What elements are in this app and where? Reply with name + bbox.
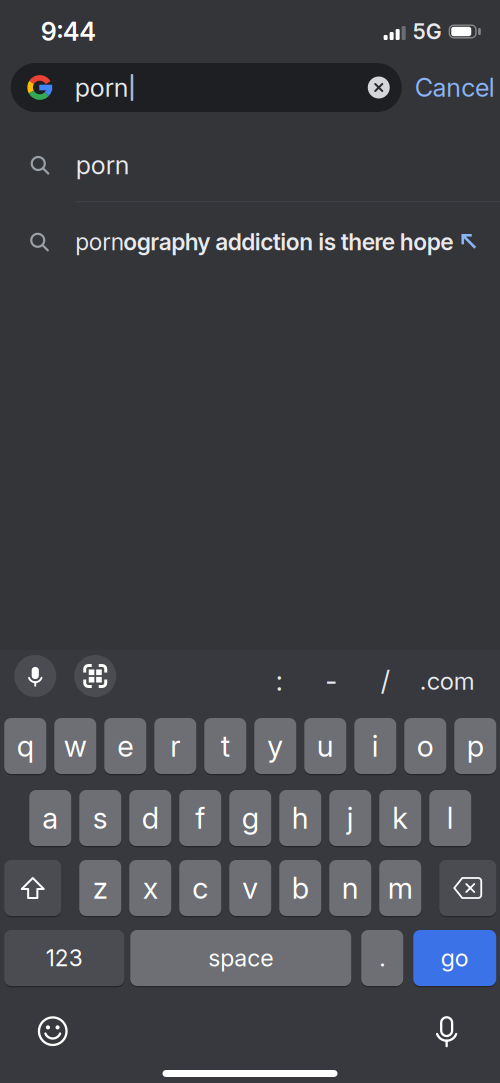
- button[interactable]: t: [204, 718, 246, 774]
- button[interactable]: f: [179, 790, 221, 846]
- staticText: t: [221, 728, 230, 764]
- staticText: :: [276, 665, 283, 697]
- button[interactable]: e: [104, 718, 146, 774]
- button[interactable]: x: [129, 860, 171, 916]
- button[interactable]: :: [269, 660, 289, 692]
- staticText: -: [325, 665, 337, 697]
- button[interactable]: Shift: [4, 860, 61, 916]
- staticText: 5G: [413, 19, 442, 44]
- staticText: u: [317, 728, 334, 764]
- staticText: v: [242, 870, 258, 906]
- button[interactable]: s: [79, 790, 121, 846]
- staticText: r: [170, 728, 180, 764]
- button[interactable]: Cancel: [415, 72, 495, 103]
- button[interactable]: r: [154, 718, 196, 774]
- staticText: c: [192, 870, 208, 906]
- staticText: go: [441, 944, 469, 972]
- staticText: g: [242, 800, 259, 836]
- staticText: m: [388, 870, 413, 906]
- button[interactable]: Scan Text: [74, 655, 116, 697]
- staticText: y: [267, 728, 283, 764]
- button[interactable]: space: [130, 930, 351, 986]
- button[interactable]: z: [79, 860, 121, 916]
- button[interactable]: w: [54, 718, 96, 774]
- button[interactable]: -: [321, 660, 341, 692]
- staticText: x: [143, 870, 158, 906]
- button[interactable]: l: [429, 790, 471, 846]
- button[interactable]: o: [404, 718, 446, 774]
- staticText: i: [372, 728, 379, 764]
- button[interactable]: porn: [0, 129, 500, 201]
- staticText: f: [195, 800, 205, 836]
- button[interactable]: n: [329, 860, 371, 916]
- staticText: a: [42, 800, 58, 836]
- button[interactable]: b: [279, 860, 321, 916]
- button[interactable]: .: [361, 930, 403, 986]
- button[interactable]: u: [304, 718, 346, 774]
- button[interactable]: /: [375, 660, 395, 692]
- button[interactable]: porn: [11, 63, 402, 112]
- staticText: w: [64, 728, 87, 764]
- staticText: Cancel: [415, 72, 495, 103]
- staticText: h: [292, 800, 309, 836]
- staticText: d: [142, 800, 159, 836]
- button[interactable]: a: [29, 790, 71, 846]
- button[interactable]: 123: [4, 930, 124, 986]
- staticText: b: [292, 870, 309, 906]
- button[interactable]: Clear text: [368, 76, 390, 98]
- button[interactable]: Dictation: [14, 655, 56, 697]
- button[interactable]: k: [379, 790, 421, 846]
- button[interactable]: d: [129, 790, 171, 846]
- staticText: 123: [46, 944, 83, 972]
- staticText: l: [447, 800, 454, 836]
- button[interactable]: c: [179, 860, 221, 916]
- staticText: /: [381, 665, 390, 697]
- staticText: porn: [75, 72, 129, 103]
- staticText: n: [342, 870, 359, 906]
- button[interactable]: m: [379, 860, 421, 916]
- button[interactable]: .com: [417, 661, 477, 690]
- staticText: s: [93, 800, 108, 836]
- button[interactable]: i: [354, 718, 396, 774]
- button[interactable]: g: [229, 790, 271, 846]
- button[interactable]: v: [229, 860, 271, 916]
- staticText: porn: [76, 150, 130, 180]
- staticText: e: [117, 728, 133, 764]
- button[interactable]: p: [454, 718, 496, 774]
- staticText: q: [17, 728, 34, 764]
- button[interactable]: j: [329, 790, 371, 846]
- button[interactable]: pornography addiction is there hope: [0, 202, 500, 281]
- button[interactable]: h: [279, 790, 321, 846]
- staticText: k: [392, 800, 408, 836]
- staticText: o: [417, 728, 434, 764]
- staticText: pornography addiction is there hope: [75, 228, 453, 256]
- staticText: .: [379, 944, 385, 972]
- button[interactable]: Delete: [439, 860, 496, 916]
- button[interactable]: q: [4, 718, 46, 774]
- button[interactable]: Emoji: [37, 1016, 68, 1047]
- staticText: p: [467, 728, 484, 764]
- button[interactable]: y: [254, 718, 296, 774]
- staticText: j: [347, 800, 354, 836]
- button[interactable]: Dictation: [431, 1013, 462, 1049]
- button[interactable]: go: [413, 930, 496, 986]
- staticText: z: [93, 870, 108, 906]
- staticText: 9:44: [41, 16, 96, 47]
- staticText: space: [208, 944, 273, 972]
- button[interactable]: Put suggestion in search field: [461, 233, 478, 250]
- staticText: .com: [420, 666, 475, 695]
